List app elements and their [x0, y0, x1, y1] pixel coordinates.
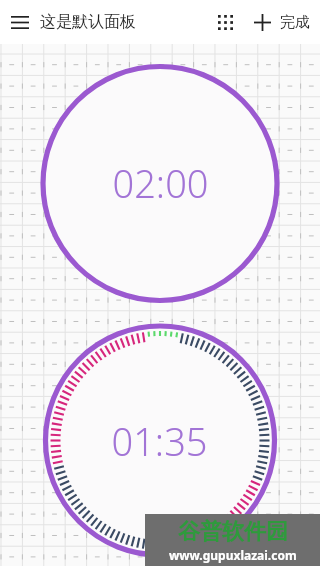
button[interactable]: 完成 — [280, 0, 310, 44]
staticText: 01:35 — [111, 415, 208, 467]
staticText: 02:00 — [112, 157, 209, 209]
staticText: www.gupuxlazai.com — [169, 547, 297, 563]
staticText: 完成 — [280, 13, 310, 32]
button[interactable]: 02:00 — [43, 66, 277, 300]
staticText: 谷普软件园 — [178, 518, 288, 546]
button[interactable]: 这是默认面板 — [40, 0, 206, 44]
button[interactable]: Add — [244, 0, 280, 44]
button[interactable]: Grid view — [206, 0, 244, 44]
button[interactable]: 01:35 — [45, 326, 274, 555]
button[interactable]: Menu — [0, 0, 40, 44]
staticText: 这是默认面板 — [40, 12, 136, 32]
